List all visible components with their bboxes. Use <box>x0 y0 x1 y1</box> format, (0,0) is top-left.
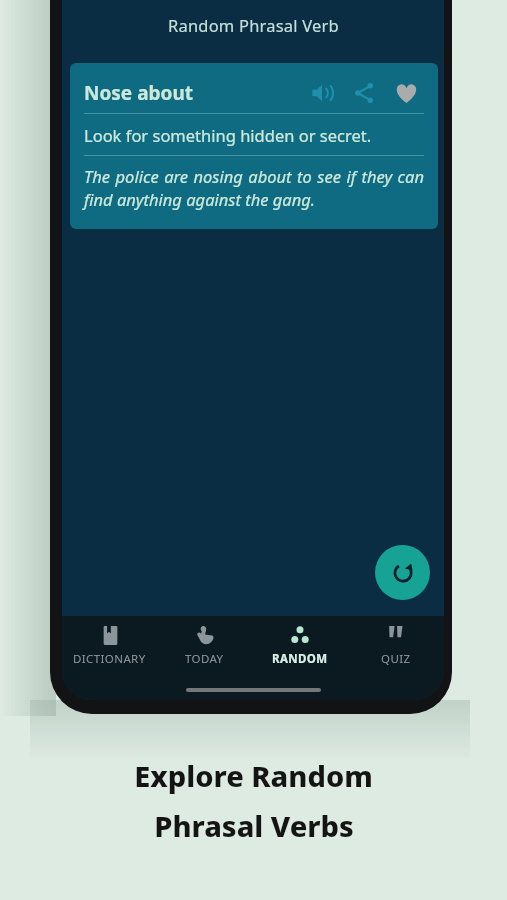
staticText: DICTIONARY <box>73 651 146 667</box>
staticText: Nose about <box>84 80 194 106</box>
staticText: Random Phrasal Verb <box>168 14 339 36</box>
button[interactable]: TODAY <box>157 616 252 674</box>
staticText: The police are nosing about to see if th… <box>84 165 424 211</box>
button[interactable]: QUIZ <box>348 616 444 674</box>
button[interactable]: Nose about <box>70 63 438 229</box>
staticText: Look for something hidden or secret. <box>84 124 372 146</box>
button[interactable]: RANDOM <box>252 616 348 674</box>
button[interactable]: Pronounce <box>304 75 340 111</box>
staticText: TODAY <box>185 651 224 667</box>
button[interactable]: Refresh <box>375 545 430 600</box>
staticText: Explore Random <box>134 756 373 795</box>
button[interactable]: Share <box>346 75 382 111</box>
button[interactable]: Favourite <box>388 75 424 111</box>
staticText: QUIZ <box>381 651 411 667</box>
button[interactable]: DICTIONARY <box>62 616 157 674</box>
staticText: Phrasal Verbs <box>154 806 354 845</box>
staticText: RANDOM <box>272 651 328 667</box>
